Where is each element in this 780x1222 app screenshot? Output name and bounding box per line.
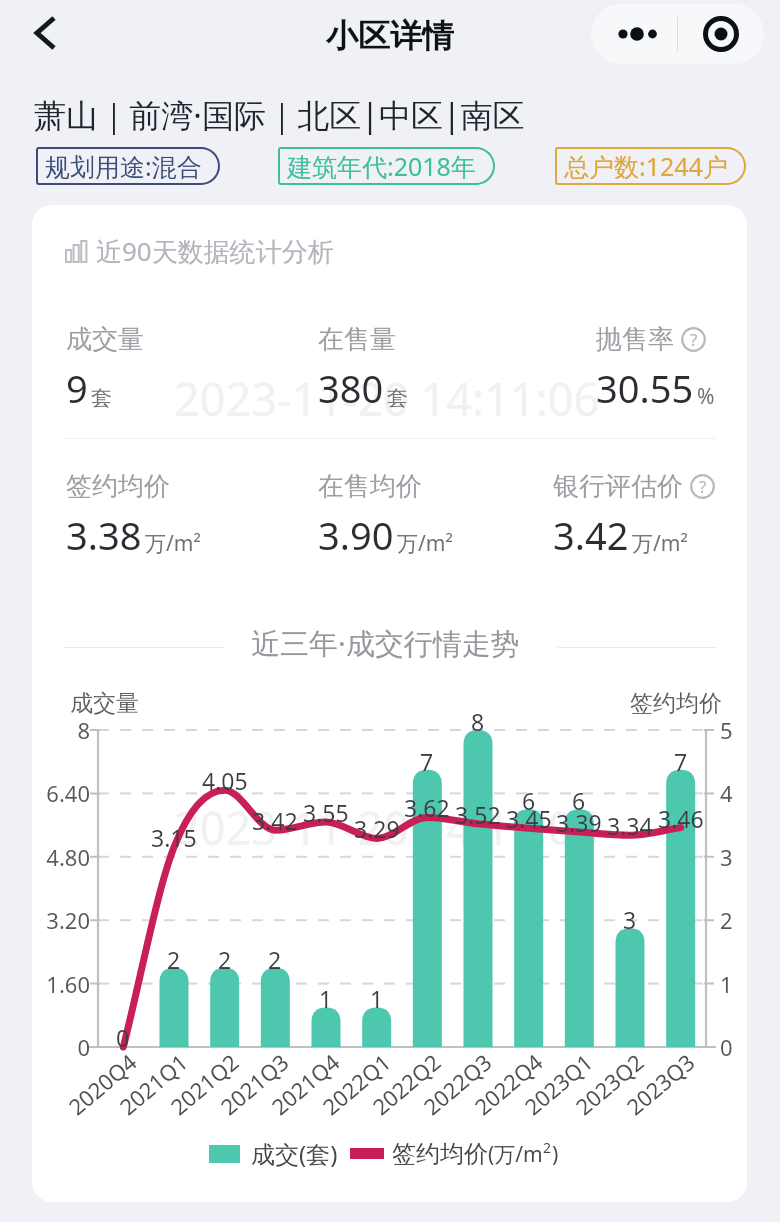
button[interactable]: Close [678,4,764,64]
staticText: 2023-11-20 14:11:06 [174,368,600,429]
staticText: 1 [319,983,333,1014]
staticText: 3.62 [404,792,450,823]
staticText: 3.20 [46,905,90,935]
staticText: 2023-11-20 14:11:06 [174,797,600,858]
staticText: 2023Q1 [518,1046,599,1121]
staticText: 2020Q4 [62,1046,143,1121]
staticText: 成交量 [66,323,144,356]
staticText: 3.46 [658,803,704,834]
staticText: 3.42 [252,805,298,836]
staticText: 2021Q3 [214,1046,295,1121]
staticText: 4.05 [202,765,248,796]
staticText: 1.60 [46,969,90,999]
staticText: 建筑年代:2018年 [287,149,476,183]
staticText: 2 [268,944,282,975]
staticText: 万/m² [397,529,453,558]
staticText: 5 [720,715,733,745]
staticText: 3.34 [607,810,653,841]
staticText: 3.42 [553,509,629,561]
staticText: 0 [77,1032,90,1062]
staticText: 3 [623,904,637,935]
staticText: 2021Q2 [164,1046,245,1121]
staticText: 3.29 [354,813,400,844]
staticText: 成交量 [70,689,139,718]
staticText: 银行评估价 [553,470,683,503]
staticText: 2 [167,944,181,975]
staticText: % [697,382,715,411]
staticText: 套 [387,385,408,411]
staticText: 0 [720,1032,733,1062]
staticText: 在售均价 [318,470,422,503]
staticText: 在售量 [318,323,396,356]
staticText: 近三年·成交行情走势 [251,623,520,663]
staticText: 3.90 [318,509,394,561]
staticText: 6 [522,785,536,816]
staticText: 3 [720,842,733,872]
staticText: 3.38 [66,509,142,561]
staticText: 4.80 [46,842,90,872]
staticText: ? [699,475,707,498]
staticText: 4 [720,778,733,808]
staticText: 7 [674,746,688,777]
staticText: 2 [720,905,733,935]
staticText: 抛售率 [596,323,674,356]
staticText: 3.55 [303,797,349,828]
staticText: 万/m² [145,529,201,558]
staticText: (万/m [488,1140,543,1169]
staticText: 3.45 [506,803,552,834]
staticText: 6 [572,785,586,816]
staticText: 2023Q2 [569,1046,650,1121]
staticText: 9 [66,362,88,414]
staticText: 2022Q4 [468,1046,549,1121]
staticText: 30.55 [596,362,694,414]
staticText: 签约均价 [392,1139,488,1169]
staticText: 8 [471,706,485,737]
staticText: 萧山｜前湾·国际｜北区|中区|南区 [34,93,525,137]
button[interactable]: More options [591,4,677,64]
staticText: 2022Q1 [316,1046,397,1121]
staticText: 1 [720,969,733,999]
button[interactable]: 建筑年代:2018年 [278,147,495,185]
staticText: 2 [543,1138,552,1157]
staticText: 2023Q3 [620,1046,701,1121]
button[interactable]: Back [20,8,70,58]
staticText: 6.40 [46,778,90,808]
staticText: ) [552,1140,559,1169]
staticText: 2 [218,944,232,975]
staticText: 2022Q2 [366,1046,447,1121]
staticText: 3.39 [556,807,602,838]
staticText: 8 [77,715,90,745]
staticText: ? [690,328,698,351]
staticText: 成交(套) [251,1137,338,1170]
staticText: 总户数:1244户 [564,149,728,183]
staticText: 380 [318,362,384,414]
staticText: 2021Q1 [113,1046,194,1121]
staticText: 3.52 [455,799,501,830]
staticText: 规划用途:混合 [45,149,202,183]
staticText: 2022Q3 [417,1046,498,1121]
staticText: 1 [370,983,384,1014]
staticText: 7 [420,746,434,777]
staticText: 0 [116,1022,130,1053]
button[interactable]: 总户数:1244户 [555,147,746,185]
staticText: 套 [91,385,112,411]
staticText: 3.15 [151,822,197,853]
staticText: 近90天数据统计分析 [96,233,334,269]
staticText: 2021Q4 [265,1046,346,1121]
staticText: 签约均价 [630,689,722,718]
staticText: 万/m² [632,529,688,558]
button[interactable]: 规划用途:混合 [36,147,220,185]
staticText: 签约均价 [66,470,170,503]
staticText: 小区详情 [326,16,454,56]
